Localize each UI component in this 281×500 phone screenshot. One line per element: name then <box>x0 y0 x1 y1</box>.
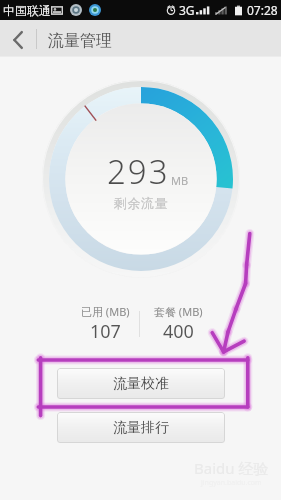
staticText: 中国联通 <box>3 3 51 18</box>
button[interactable]: 流量校准 <box>57 368 225 399</box>
staticText: 07:28 <box>247 2 278 18</box>
staticText: 400 <box>163 319 194 344</box>
staticText: MB <box>171 173 189 188</box>
staticText: 流量排行 <box>113 419 169 437</box>
staticText: 套餐 (MB) <box>154 304 203 319</box>
staticText: 已用 (MB) <box>81 304 130 319</box>
button[interactable]: 已用 (MB) <box>69 304 142 344</box>
staticText: 3G <box>179 2 195 18</box>
staticText: 流量校准 <box>113 375 169 393</box>
button[interactable]: 套餐 (MB) <box>142 304 215 344</box>
staticText: 流量管理 <box>48 31 112 51</box>
staticText: Baidu 经验 <box>194 458 269 478</box>
staticText: 107 <box>90 319 121 344</box>
button[interactable]: Back <box>0 20 36 56</box>
staticText: 293 <box>107 149 170 194</box>
button[interactable]: 流量排行 <box>57 412 225 443</box>
staticText: 剩余流量 <box>114 195 169 211</box>
